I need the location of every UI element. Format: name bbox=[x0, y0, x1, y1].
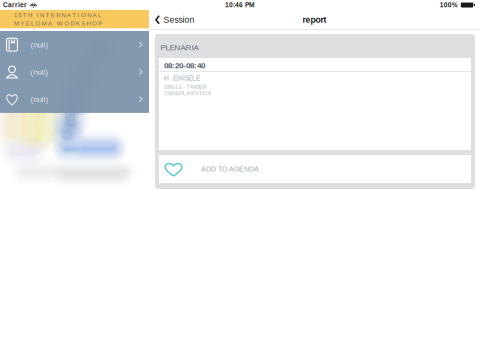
staticText: PLENARIA bbox=[160, 43, 198, 52]
staticText: report bbox=[302, 15, 326, 25]
button[interactable]: Speakers bbox=[0, 58, 149, 86]
staticText: 10:46 PM bbox=[225, 1, 255, 9]
staticText: SINGLE - TANDEM bbox=[164, 84, 206, 90]
staticText: Session bbox=[163, 15, 194, 24]
button[interactable]: ADD TO AGENDA bbox=[159, 155, 471, 183]
staticText: H. EINSELE bbox=[164, 74, 200, 82]
staticText: MYELOMA WORKSHOP bbox=[14, 20, 102, 27]
staticText: TRANSPLANTATION bbox=[164, 91, 210, 96]
button[interactable]: Session bbox=[149, 12, 194, 28]
staticText: 100% bbox=[440, 1, 458, 9]
staticText: 15TH INTERNATIONAL bbox=[14, 12, 101, 19]
staticText: (null) bbox=[30, 40, 48, 49]
staticText: (null) bbox=[30, 67, 48, 76]
button[interactable]: My agenda bbox=[0, 86, 149, 113]
staticText: Carrier bbox=[3, 1, 27, 9]
staticText: (null) bbox=[30, 95, 48, 104]
staticText: 08:20-08:40 bbox=[164, 61, 205, 70]
staticText: ADD TO AGENDA bbox=[201, 165, 259, 173]
button[interactable]: Programme bbox=[0, 31, 149, 58]
